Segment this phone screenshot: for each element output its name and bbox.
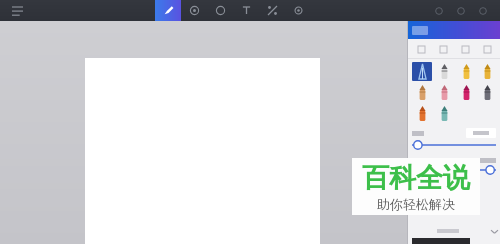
button[interactable]: Text — [233, 0, 259, 21]
button[interactable]: Slider — [412, 163, 496, 177]
button[interactable]: Smudge — [181, 0, 207, 21]
button[interactable]: Redo — [450, 0, 472, 21]
button[interactable]: Copy — [456, 40, 474, 58]
button[interactable] — [408, 21, 500, 39]
button[interactable]: Brush 8 — [412, 104, 432, 123]
button[interactable]: Collapse — [408, 224, 500, 237]
button[interactable]: Layers — [434, 40, 452, 58]
other: Collapse — [488, 225, 500, 237]
button[interactable] — [466, 128, 496, 138]
button[interactable]: Settings — [285, 0, 311, 21]
button[interactable]: Brush 7 — [478, 83, 496, 102]
button[interactable]: Undo — [428, 0, 450, 21]
button[interactable]: Eraser — [207, 0, 233, 21]
button[interactable]: Brush 5 — [434, 83, 454, 102]
button[interactable]: Brush 4 — [412, 83, 432, 102]
button[interactable]: Brush 0 — [412, 62, 432, 81]
button[interactable]: Brush 6 — [456, 83, 476, 102]
button[interactable]: Brush 2 — [456, 62, 476, 81]
button[interactable]: Brush 3 — [478, 62, 496, 81]
staticText: 百科全说 — [362, 161, 470, 195]
staticText: 助你轻松解决 — [377, 196, 455, 212]
button[interactable]: Options — [478, 40, 496, 58]
button[interactable]: Brush 1 — [434, 62, 454, 81]
button[interactable]: Brush 9 — [434, 104, 454, 123]
button[interactable]: Transform — [259, 0, 285, 21]
button[interactable]: Menu — [6, 0, 28, 21]
button[interactable]: Slider — [412, 138, 496, 152]
button[interactable]: Brush — [155, 0, 181, 21]
button[interactable]: Select — [412, 40, 430, 58]
button[interactable]: More — [472, 0, 494, 21]
